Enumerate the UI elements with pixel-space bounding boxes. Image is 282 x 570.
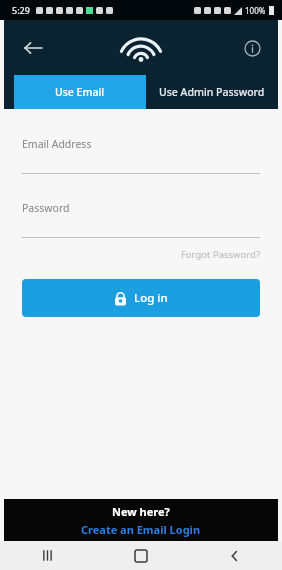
button[interactable]: Create an Email Login bbox=[81, 522, 201, 537]
staticText: 5:29 bbox=[12, 4, 30, 16]
button[interactable]: Info bbox=[238, 34, 266, 62]
button[interactable]: Back bbox=[188, 541, 282, 570]
button[interactable]: Recents bbox=[0, 541, 94, 570]
button[interactable]: Home bbox=[94, 541, 188, 570]
staticText: Create an Email Login bbox=[81, 522, 201, 537]
staticText: 100% bbox=[245, 5, 266, 16]
button[interactable]: Log in bbox=[22, 279, 260, 317]
staticText: New here? bbox=[112, 504, 170, 519]
staticText: Log in bbox=[134, 290, 168, 306]
button[interactable]: Use Admin Password bbox=[146, 75, 278, 109]
staticText: Password bbox=[22, 201, 70, 215]
staticText: Use Admin Password bbox=[159, 85, 265, 99]
staticText: Use Email bbox=[55, 85, 105, 99]
button[interactable]: Back bbox=[18, 33, 48, 63]
button[interactable]: Use Email bbox=[14, 75, 146, 109]
button[interactable]: Forgot Password? bbox=[22, 248, 260, 261]
staticText: Email Address bbox=[22, 137, 92, 151]
staticText: Forgot Password? bbox=[180, 248, 260, 261]
